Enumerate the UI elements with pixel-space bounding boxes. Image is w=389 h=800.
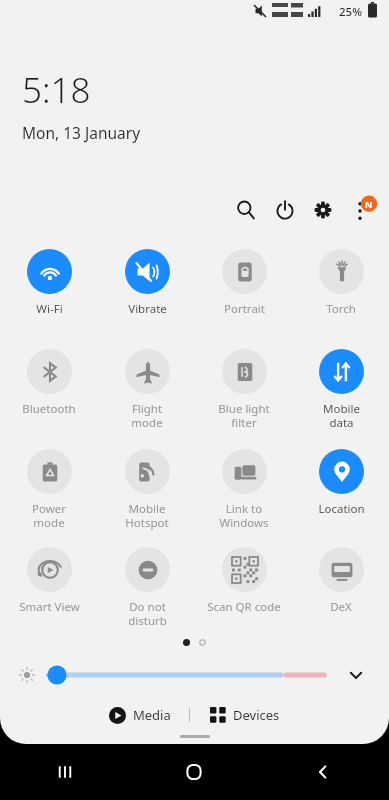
button[interactable]: Settings [309, 196, 337, 224]
button[interactable]: Do not disturb [104, 547, 190, 628]
staticText: Power mode [32, 501, 66, 530]
button[interactable]: Brightness slider [46, 662, 327, 688]
staticText: Vibrate [128, 301, 167, 317]
button[interactable]: Wi-Fi [6, 249, 92, 317]
staticText: Link to Windows [219, 501, 269, 530]
staticText: Mon, 13 January [22, 122, 141, 143]
staticText: Mobile Hotspot [125, 501, 169, 530]
button[interactable]: More options [348, 196, 378, 226]
button[interactable]: DeX [298, 547, 384, 615]
button[interactable]: Mobile Hotspot [104, 449, 190, 530]
staticText: N [365, 198, 373, 210]
button[interactable]: Mobile data [298, 349, 384, 430]
staticText: 5:18 [22, 66, 91, 114]
staticText: Media [133, 706, 171, 724]
button[interactable]: Expand brightness settings [343, 662, 369, 688]
staticText: Scan QR code [207, 599, 281, 615]
staticText: 25% [339, 4, 362, 20]
button[interactable]: Home [129, 744, 259, 800]
button[interactable]: Smart View [6, 547, 92, 615]
button[interactable]: Portrait [201, 249, 287, 317]
button[interactable]: Torch [298, 249, 384, 317]
button[interactable]: Bluetooth [6, 349, 92, 417]
button[interactable]: Blue light filter [201, 349, 287, 430]
staticText: Torch [326, 301, 356, 317]
staticText: Devices [233, 706, 280, 724]
button[interactable]: Recent apps [0, 744, 129, 800]
button[interactable]: Location [298, 449, 384, 517]
button[interactable]: Search [232, 196, 260, 224]
staticText: Do not disturb [128, 599, 167, 628]
staticText: DeX [330, 599, 352, 615]
staticText: Blue light filter [218, 401, 270, 430]
staticText: Smart View [19, 599, 80, 615]
button[interactable]: Flight mode [104, 349, 190, 430]
staticText: Mobile data [323, 401, 360, 430]
staticText: Portrait [224, 301, 265, 317]
button[interactable]: Media [103, 702, 177, 728]
staticText: Bluetooth [22, 401, 76, 417]
staticText: Location [318, 501, 365, 517]
button[interactable]: Devices [204, 702, 286, 728]
button[interactable]: Link to Windows [201, 449, 287, 530]
button[interactable]: Back [259, 744, 389, 800]
button[interactable]: Power mode [6, 449, 92, 530]
staticText: Flight mode [131, 401, 163, 430]
button[interactable]: Auto brightness [14, 662, 40, 688]
button[interactable]: Scan QR code [201, 547, 287, 615]
staticText: Wi-Fi [36, 301, 63, 317]
button[interactable]: Vibrate [104, 249, 190, 317]
button[interactable]: Power off [271, 196, 299, 224]
